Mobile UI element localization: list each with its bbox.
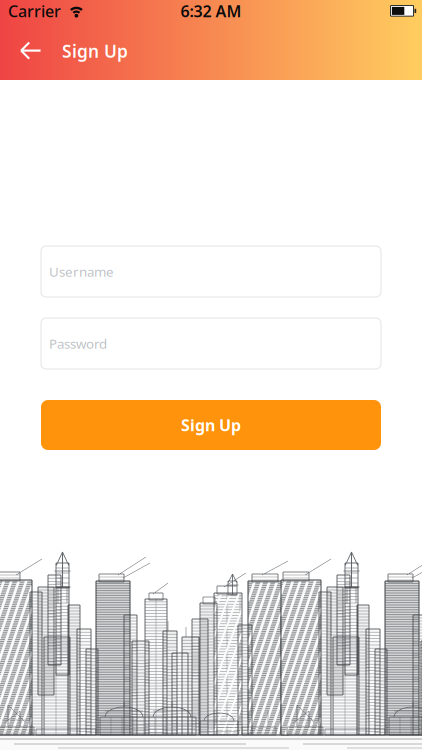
button[interactable]: Sign Up bbox=[41, 400, 381, 450]
staticText: 6:32 AM bbox=[180, 0, 241, 22]
staticText: Username bbox=[49, 263, 114, 280]
button[interactable]: Back bbox=[0, 22, 62, 80]
staticText: Sign Up bbox=[181, 414, 241, 436]
button[interactable]: Password bbox=[41, 318, 381, 369]
staticText: Sign Up bbox=[62, 39, 128, 62]
staticText: Carrier bbox=[8, 0, 61, 22]
staticText: Password bbox=[49, 335, 107, 352]
button[interactable]: Username bbox=[41, 246, 381, 297]
